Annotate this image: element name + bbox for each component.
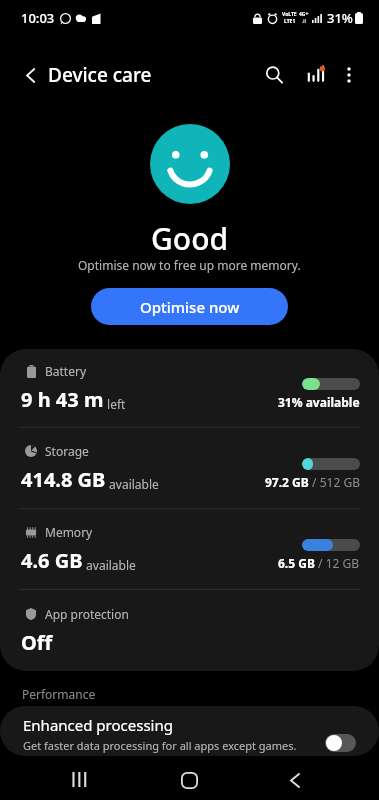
staticText: 4.6 GB bbox=[21, 547, 83, 574]
button[interactable]: Recent apps bbox=[55, 756, 103, 800]
staticText: Battery bbox=[45, 363, 87, 379]
button[interactable]: Diagnostics bbox=[294, 54, 336, 96]
staticText: available bbox=[106, 476, 159, 492]
staticText: VoLTE bbox=[282, 11, 297, 18]
staticText: 9 h 43 m bbox=[21, 386, 104, 413]
staticText: 31% bbox=[327, 9, 353, 27]
button[interactable]: Enhanced processing toggle bbox=[325, 734, 356, 752]
staticText: 6.5 GB bbox=[278, 555, 315, 571]
staticText: App protection bbox=[45, 606, 129, 622]
staticText: 97.2 GB bbox=[265, 474, 309, 490]
staticText: 10:03 bbox=[21, 9, 55, 27]
button[interactable]: Enhanced processing bbox=[0, 706, 379, 756]
staticText: left bbox=[104, 396, 126, 412]
button[interactable]: Storage bbox=[0, 428, 379, 508]
staticText: Memory bbox=[45, 524, 93, 540]
button[interactable]: Memory bbox=[0, 509, 379, 589]
button[interactable]: More options bbox=[328, 54, 370, 96]
staticText: / 12 GB bbox=[315, 555, 360, 571]
staticText: Off bbox=[21, 629, 53, 656]
button[interactable]: App protection bbox=[0, 590, 379, 671]
button[interactable]: Optimise now bbox=[91, 288, 288, 325]
staticText: Good bbox=[151, 218, 229, 259]
staticText: Optimise now bbox=[140, 297, 240, 317]
staticText: LTE1 bbox=[284, 18, 296, 25]
staticText: Storage bbox=[45, 443, 89, 459]
staticText: Enhanced processing bbox=[23, 715, 173, 735]
button[interactable]: Back bbox=[271, 756, 319, 800]
staticText: / 512 GB bbox=[309, 474, 360, 490]
staticText: .il bbox=[302, 18, 306, 25]
staticText: Performance bbox=[22, 686, 96, 702]
staticText: 31% available bbox=[278, 394, 360, 410]
staticText: 414.8 GB bbox=[21, 466, 106, 493]
staticText: Device care bbox=[48, 62, 152, 88]
button[interactable]: Battery bbox=[0, 349, 379, 427]
button[interactable]: Search bbox=[253, 54, 295, 96]
button[interactable]: Home bbox=[165, 756, 213, 800]
button[interactable]: Navigate up bbox=[4, 49, 56, 101]
staticText: 4G+ bbox=[299, 11, 309, 18]
staticText: Get faster data processing for all apps … bbox=[23, 738, 297, 753]
staticText: Optimise now to free up more memory. bbox=[78, 257, 301, 273]
staticText: available bbox=[83, 557, 136, 573]
